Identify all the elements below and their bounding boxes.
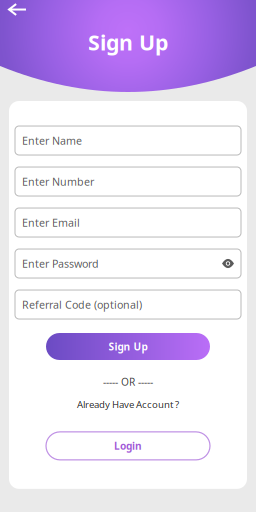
staticText: Sign Up <box>108 340 147 353</box>
staticText: Already Have Account ? <box>77 398 179 411</box>
button[interactable]: Login <box>46 432 210 460</box>
staticText: ----- OR ----- <box>103 375 153 389</box>
staticText: Login <box>114 439 142 453</box>
staticText: Enter Password <box>22 256 99 271</box>
button[interactable]: Sign Up <box>46 333 210 360</box>
staticText: Enter Number <box>22 174 94 189</box>
staticText: Sign Up <box>88 28 168 56</box>
button[interactable]: Back <box>0 0 37 24</box>
staticText: Enter Name <box>22 133 82 148</box>
staticText: Referral Code (optional) <box>22 297 142 312</box>
staticText: Enter Email <box>22 215 80 230</box>
